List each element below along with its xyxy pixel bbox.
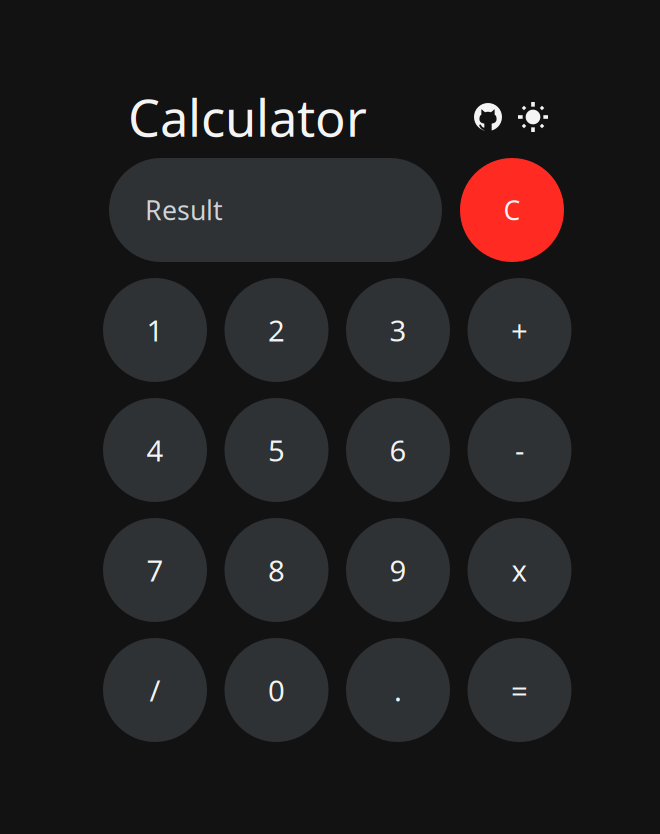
button[interactable]: C — [460, 158, 564, 262]
button[interactable]: . — [346, 638, 450, 742]
staticText: 3 — [389, 310, 406, 349]
staticText: 1 — [146, 310, 163, 349]
staticText: C — [503, 192, 520, 228]
button[interactable]: x — [467, 518, 571, 622]
button[interactable]: 6 — [346, 398, 450, 502]
button[interactable]: / — [103, 638, 207, 742]
staticText: 8 — [268, 550, 285, 589]
button[interactable]: 9 — [346, 518, 450, 622]
staticText: = — [511, 670, 528, 709]
button[interactable]: 2 — [224, 278, 328, 382]
button[interactable]: 0 — [224, 638, 328, 742]
staticText: . — [394, 670, 402, 709]
staticText: Result — [145, 192, 223, 228]
staticText: 2 — [268, 310, 285, 349]
button[interactable]: 1 — [103, 278, 207, 382]
button[interactable]: 7 — [103, 518, 207, 622]
staticText: / — [149, 670, 160, 709]
staticText: 7 — [146, 550, 163, 589]
button[interactable]: 8 — [224, 518, 328, 622]
staticText: 6 — [389, 430, 406, 469]
button[interactable]: 3 — [346, 278, 450, 382]
button[interactable]: Result — [109, 158, 442, 262]
button[interactable]: + — [467, 278, 571, 382]
staticText: Calculator — [128, 83, 367, 151]
button[interactable]: GitHub — [466, 95, 510, 139]
button[interactable]: - — [467, 398, 571, 502]
staticText: 0 — [268, 670, 285, 709]
button[interactable]: = — [467, 638, 571, 742]
staticText: 5 — [268, 430, 285, 469]
button[interactable]: 5 — [224, 398, 328, 502]
staticText: 4 — [146, 430, 163, 469]
staticText: - — [515, 430, 524, 469]
button[interactable]: 4 — [103, 398, 207, 502]
staticText: + — [511, 310, 528, 349]
staticText: x — [511, 550, 527, 589]
button[interactable]: Toggle appearance — [510, 95, 556, 139]
staticText: 9 — [389, 550, 406, 589]
